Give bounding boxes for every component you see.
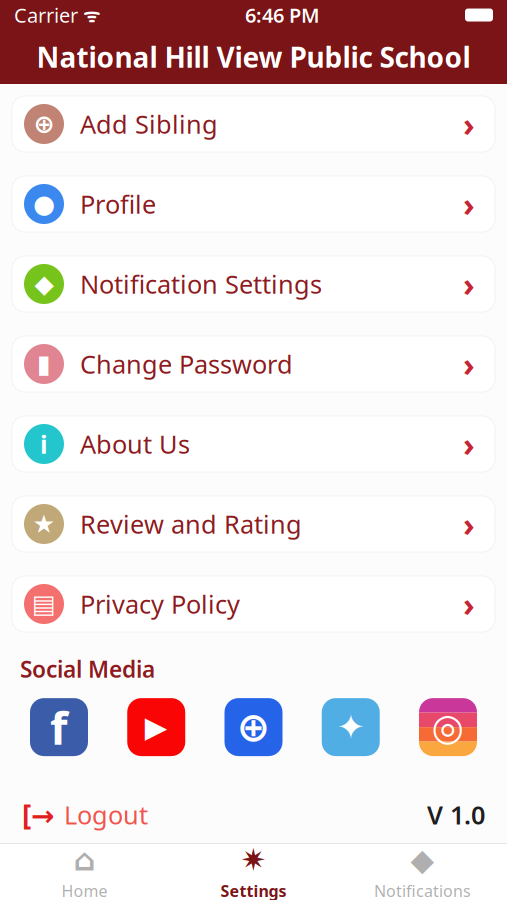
- staticText: ✷: [240, 842, 266, 877]
- button[interactable]: YouTube: [127, 698, 185, 756]
- staticText: ◎: [431, 706, 464, 748]
- staticText: Review and Rating: [80, 507, 302, 541]
- staticText: ▮: [37, 350, 51, 378]
- staticText: ›: [463, 343, 475, 385]
- staticText: ●: [33, 190, 55, 218]
- button[interactable]: ◆: [12, 256, 495, 312]
- button[interactable]: ✷: [169, 844, 338, 900]
- staticText: ⌂: [73, 842, 95, 877]
- staticText: Change Password: [80, 347, 293, 381]
- button[interactable]: [→: [22, 796, 148, 833]
- button[interactable]: Facebook: [30, 698, 88, 756]
- staticText: f: [50, 697, 68, 757]
- staticText: ★: [32, 510, 55, 538]
- staticText: ᯤ: [78, 3, 100, 27]
- button[interactable]: ◆: [338, 844, 507, 900]
- staticText: ▶: [145, 710, 168, 744]
- staticText: i: [40, 427, 48, 461]
- staticText: Profile: [80, 187, 156, 221]
- button[interactable]: ▤: [12, 576, 495, 632]
- staticText: ›: [463, 263, 475, 305]
- staticText: 6:46 PM: [245, 2, 320, 28]
- staticText: Carrier: [14, 2, 78, 28]
- staticText: ✦: [336, 707, 365, 747]
- staticText: Logout: [64, 798, 148, 831]
- staticText: ⊕: [236, 704, 270, 750]
- staticText: ▤: [32, 590, 56, 618]
- button[interactable]: Twitter: [322, 698, 380, 756]
- staticText: ›: [463, 423, 475, 465]
- button[interactable]: ★: [12, 496, 495, 552]
- button[interactable]: ⌂: [0, 844, 169, 900]
- button[interactable]: ⊕: [12, 96, 495, 152]
- button[interactable]: ●: [12, 176, 495, 232]
- button[interactable]: i: [12, 416, 495, 472]
- staticText: Privacy Policy: [80, 587, 240, 621]
- staticText: ◆: [410, 842, 434, 877]
- staticText: Notification Settings: [80, 267, 322, 301]
- staticText: ›: [463, 183, 475, 225]
- staticText: ›: [463, 103, 475, 145]
- staticText: Notifications: [374, 880, 471, 900]
- staticText: Home: [61, 880, 107, 900]
- staticText: ◆: [34, 270, 53, 298]
- button[interactable]: Instagram: [419, 698, 477, 756]
- staticText: Settings: [220, 880, 286, 900]
- staticText: Add Sibling: [80, 107, 218, 141]
- staticText: About Us: [80, 427, 190, 461]
- staticText: Social Media: [20, 654, 155, 684]
- staticText: [→: [22, 796, 54, 833]
- button[interactable]: Website: [224, 698, 282, 756]
- staticText: ⊕: [33, 110, 54, 138]
- staticText: ›: [463, 503, 475, 545]
- staticText: National Hill View Public School: [36, 38, 470, 76]
- staticText: V 1.0: [427, 798, 485, 831]
- button[interactable]: ▮: [12, 336, 495, 392]
- staticText: ›: [463, 583, 475, 625]
